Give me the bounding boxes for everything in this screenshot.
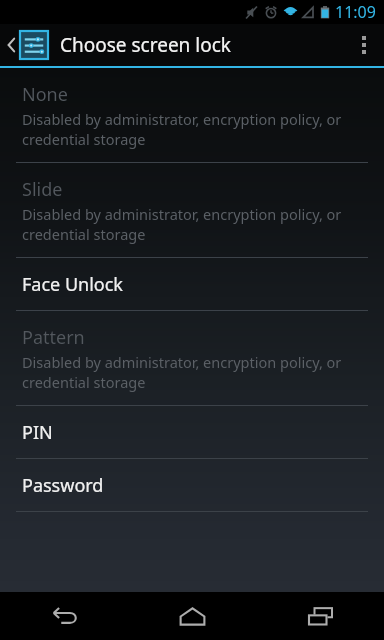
staticText: Slide [22, 177, 63, 202]
staticText: Pattern [22, 325, 85, 350]
button[interactable]: None [0, 68, 384, 162]
button[interactable]: Navigate up [0, 27, 52, 63]
staticText: Disabled by administrator, encryption po… [22, 109, 342, 129]
button[interactable]: More options [344, 24, 384, 66]
button[interactable]: Slide [0, 163, 384, 257]
staticText: credential storage [22, 129, 146, 149]
staticText: PIN [22, 420, 53, 445]
staticText: Disabled by administrator, encryption po… [22, 204, 342, 224]
button[interactable]: Face Unlock [0, 258, 384, 310]
button[interactable]: Back [9, 592, 119, 640]
staticText: 11:09 [335, 1, 376, 23]
button[interactable]: Recent apps [265, 592, 375, 640]
staticText: None [22, 82, 68, 107]
staticText: Disabled by administrator, encryption po… [22, 352, 342, 372]
staticText: credential storage [22, 224, 146, 244]
staticText: credential storage [22, 372, 146, 392]
button[interactable]: PIN [0, 406, 384, 458]
staticText: Face Unlock [22, 272, 123, 297]
button[interactable]: Pattern [0, 311, 384, 405]
staticText: Password [22, 473, 104, 498]
staticText: Choose screen lock [60, 32, 231, 58]
button[interactable]: Home [137, 592, 247, 640]
button[interactable]: Password [0, 459, 384, 511]
